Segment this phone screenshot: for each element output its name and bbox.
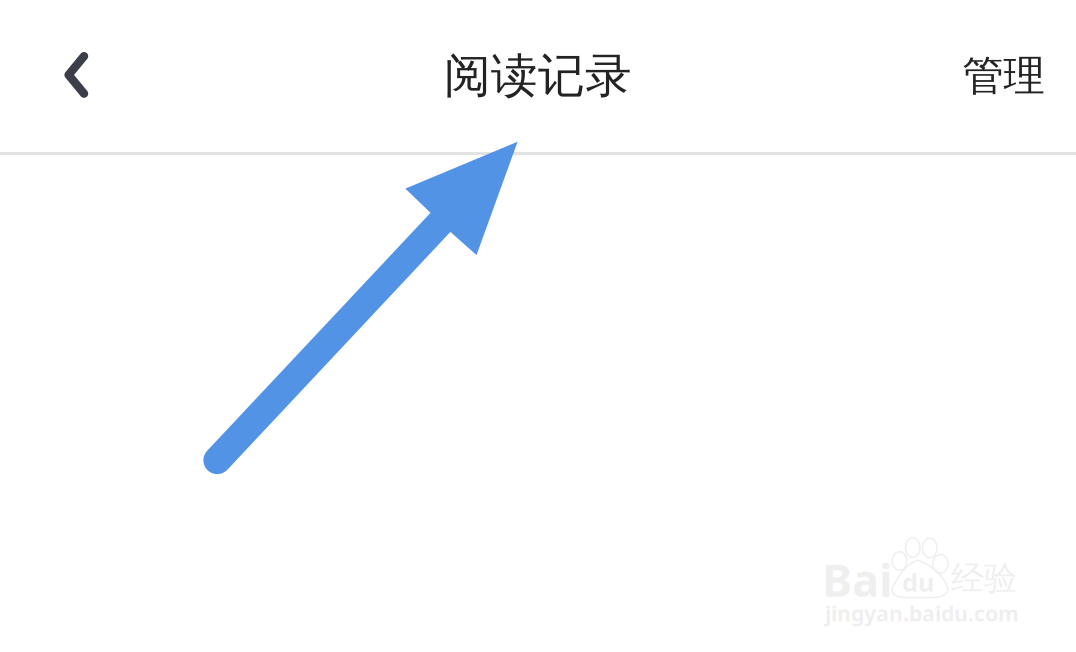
button[interactable]: Back	[0, 0, 140, 152]
button[interactable]: 管理	[931, 0, 1076, 152]
staticText: 经验	[951, 558, 1017, 599]
staticText: jingyan.baidu.com	[825, 599, 1019, 627]
staticText: 阅读记录	[444, 47, 632, 105]
staticText: du	[902, 565, 934, 599]
staticText: 管理	[962, 51, 1044, 101]
staticText: Bai	[822, 549, 893, 609]
